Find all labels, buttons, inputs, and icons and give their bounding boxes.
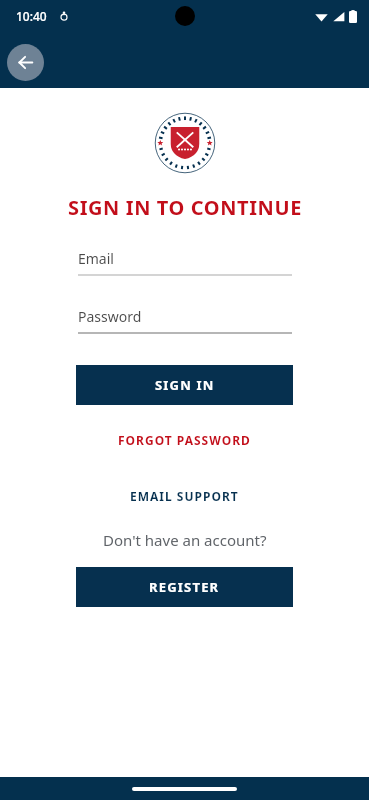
button[interactable]: FORGOT PASSWORD	[76, 427, 293, 453]
staticText: 10:40	[16, 8, 47, 24]
staticText: Email	[78, 249, 114, 268]
button[interactable]: Email	[78, 249, 292, 277]
staticText: EMAIL SUPPORT	[130, 488, 239, 504]
staticText: SIGN IN TO CONTINUE	[68, 194, 302, 221]
staticText: REGISTER	[149, 578, 220, 596]
staticText: FORGOT PASSWORD	[118, 432, 251, 448]
button[interactable]: EMAIL SUPPORT	[76, 483, 293, 509]
button[interactable]: Back	[7, 44, 44, 81]
staticText: Password	[78, 307, 142, 326]
button[interactable]: REGISTER	[76, 567, 293, 607]
button[interactable]: SIGN IN	[76, 365, 293, 405]
button[interactable]: Password	[78, 307, 292, 335]
staticText: SIGN IN	[155, 376, 215, 394]
staticText: Don't have an account?	[103, 530, 267, 550]
